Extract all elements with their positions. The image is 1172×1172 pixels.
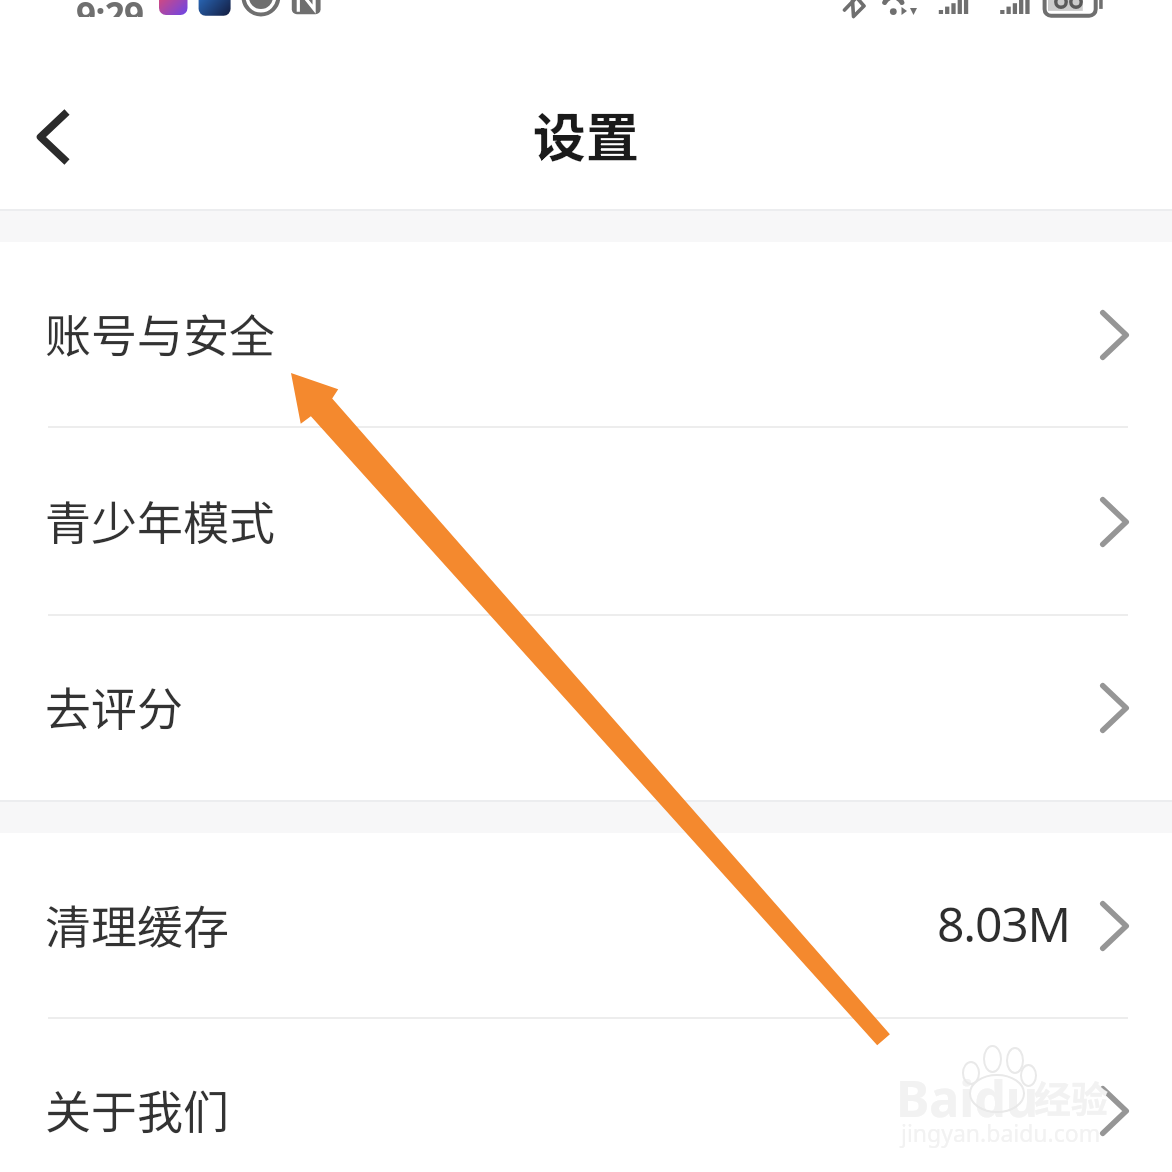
staticText: Baidu [896,1064,1039,1132]
button[interactable]: 账号与安全 [0,242,1172,428]
staticText: 账号与安全 [45,300,275,367]
staticText: 经验 [1034,1070,1108,1124]
staticText: 9:29 [76,0,144,17]
staticText: 8.03M [937,891,1070,956]
button[interactable]: 青少年模式 [0,428,1172,616]
staticText: 清理缓存 [45,891,229,958]
button[interactable]: 清理缓存 [0,833,1172,1019]
staticText: 设置 [533,96,639,173]
staticText: 去评分 [45,673,183,740]
button[interactable]: 返回 [5,92,100,187]
button[interactable]: 去评分 [0,616,1172,800]
staticText: jingyan.baidu.com [901,1117,1101,1148]
staticText: 青少年模式 [45,487,275,554]
staticText: 关于我们 [45,1076,229,1143]
button[interactable]: 关于我们 [0,1019,1172,1172]
